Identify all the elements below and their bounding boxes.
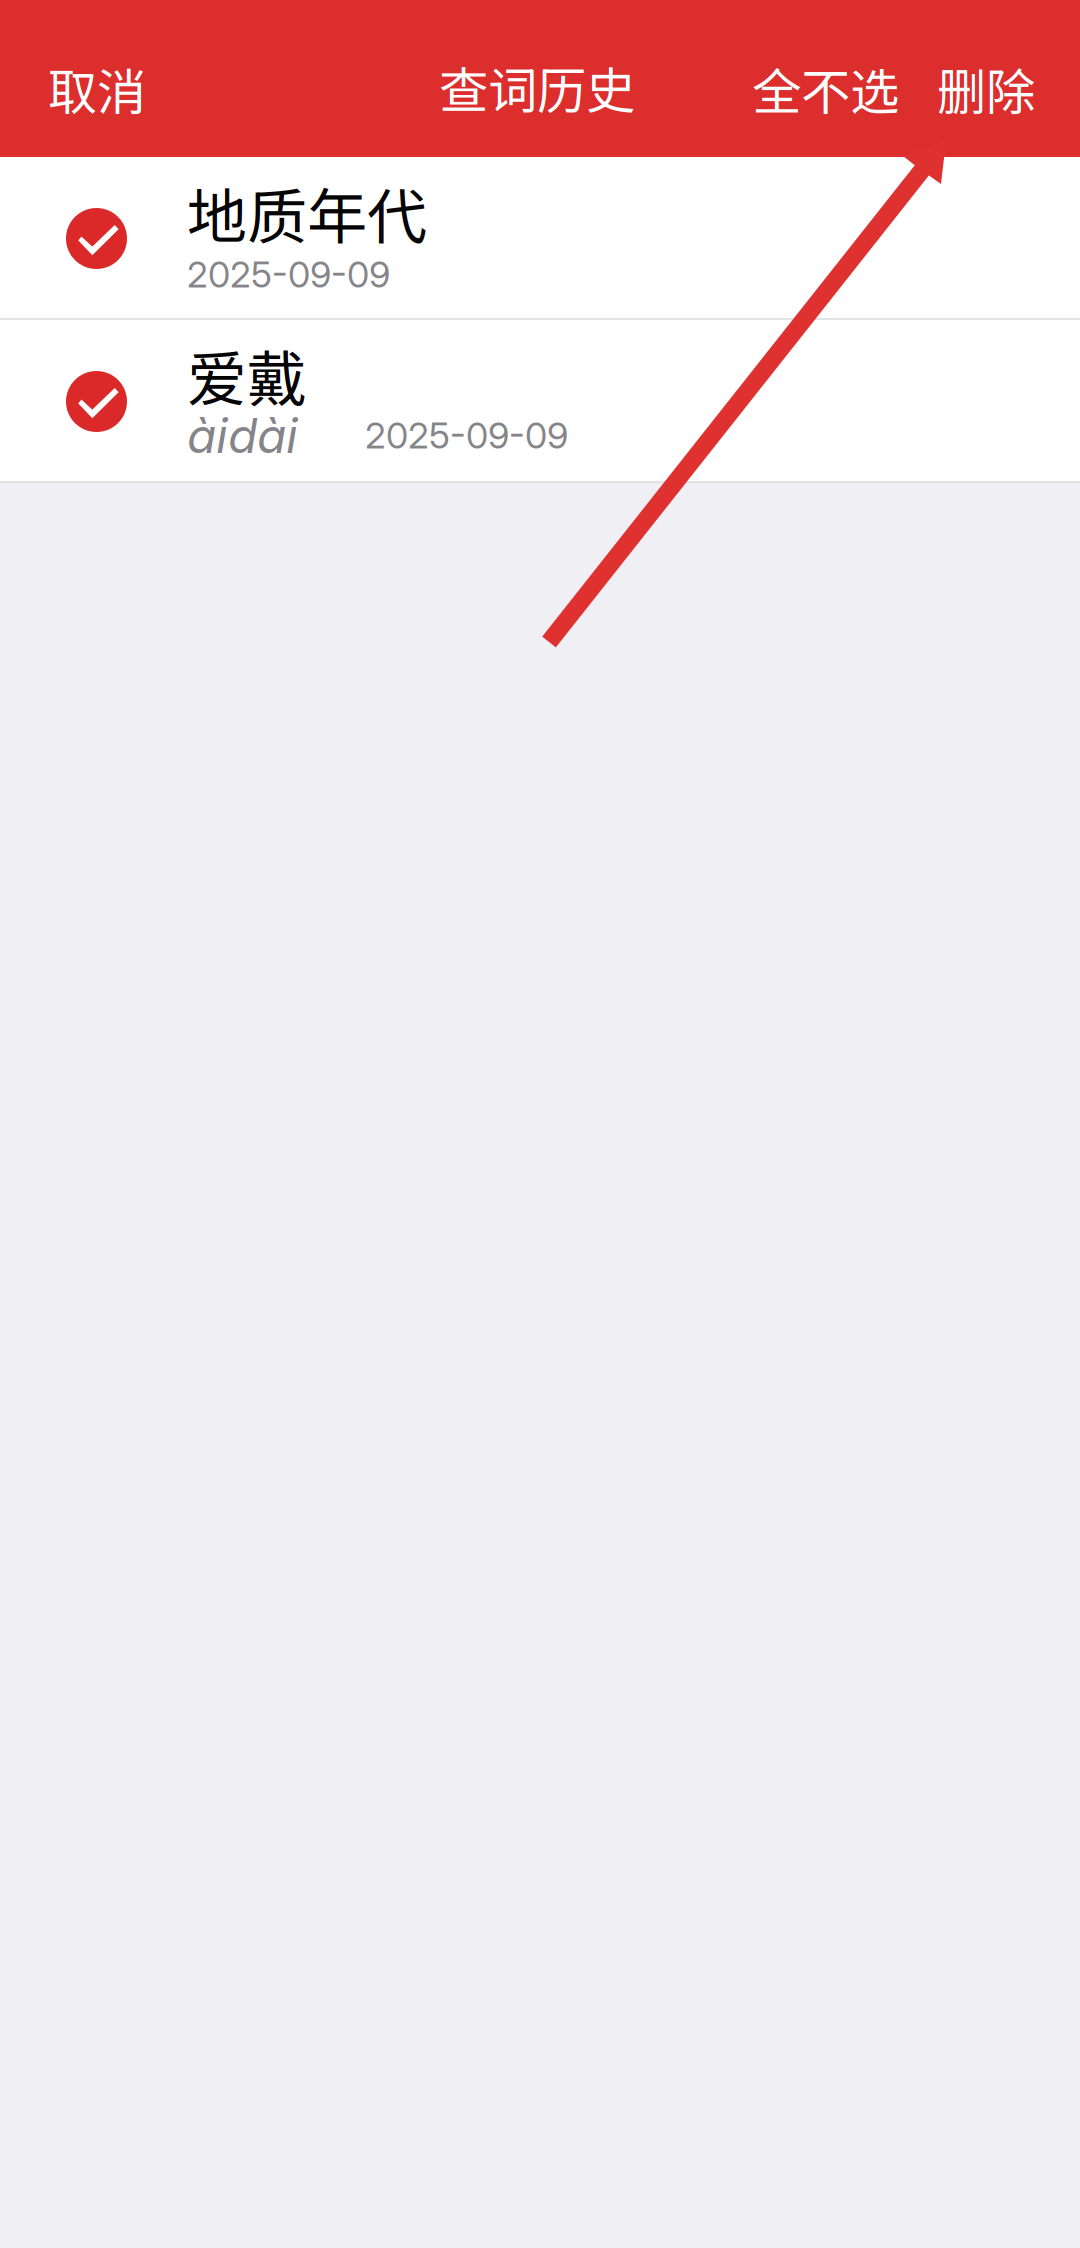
staticText: 全不选 bbox=[752, 53, 899, 124]
button[interactable]: 取消 bbox=[0, 2, 176, 155]
staticText: 删除 bbox=[937, 53, 1035, 124]
staticText: 取消 bbox=[48, 53, 146, 124]
staticText: àidài bbox=[187, 406, 298, 464]
button[interactable]: 地质年代, selected, 2025-09-09 bbox=[0, 157, 1080, 320]
staticText: 地质年代 bbox=[187, 169, 427, 256]
staticText: 爱戴 bbox=[187, 331, 307, 418]
staticText: 查词历史 bbox=[439, 51, 635, 123]
button[interactable]: 全不选 bbox=[752, 2, 899, 155]
button[interactable]: 爱戴, selected, 2025-09-09 bbox=[0, 320, 1080, 483]
button[interactable]: 删除 bbox=[899, 2, 1080, 155]
staticText: 2025-09-09 bbox=[187, 253, 390, 296]
staticText: 2025-09-09 bbox=[365, 414, 568, 457]
